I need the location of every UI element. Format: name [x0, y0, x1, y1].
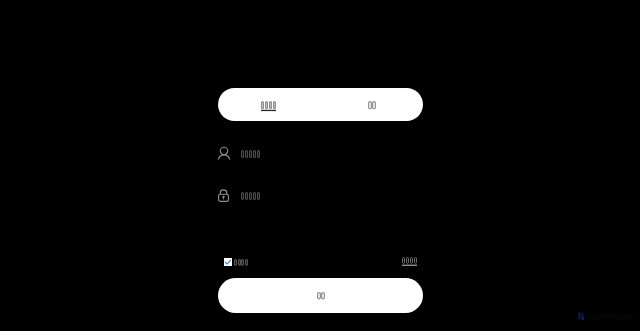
- button[interactable]: SMS login tab: [320, 88, 423, 121]
- button[interactable]: Account login tab: [218, 88, 320, 121]
- button[interactable]: Password field: [218, 188, 260, 203]
- other: Account: [218, 147, 230, 160]
- button[interactable]: Forgot password: [402, 257, 415, 264]
- button[interactable]: Agree to terms: [224, 258, 248, 266]
- button[interactable]: Log in: [218, 278, 423, 313]
- other: Password: [218, 189, 229, 202]
- button[interactable]: Phone number field: [218, 147, 260, 160]
